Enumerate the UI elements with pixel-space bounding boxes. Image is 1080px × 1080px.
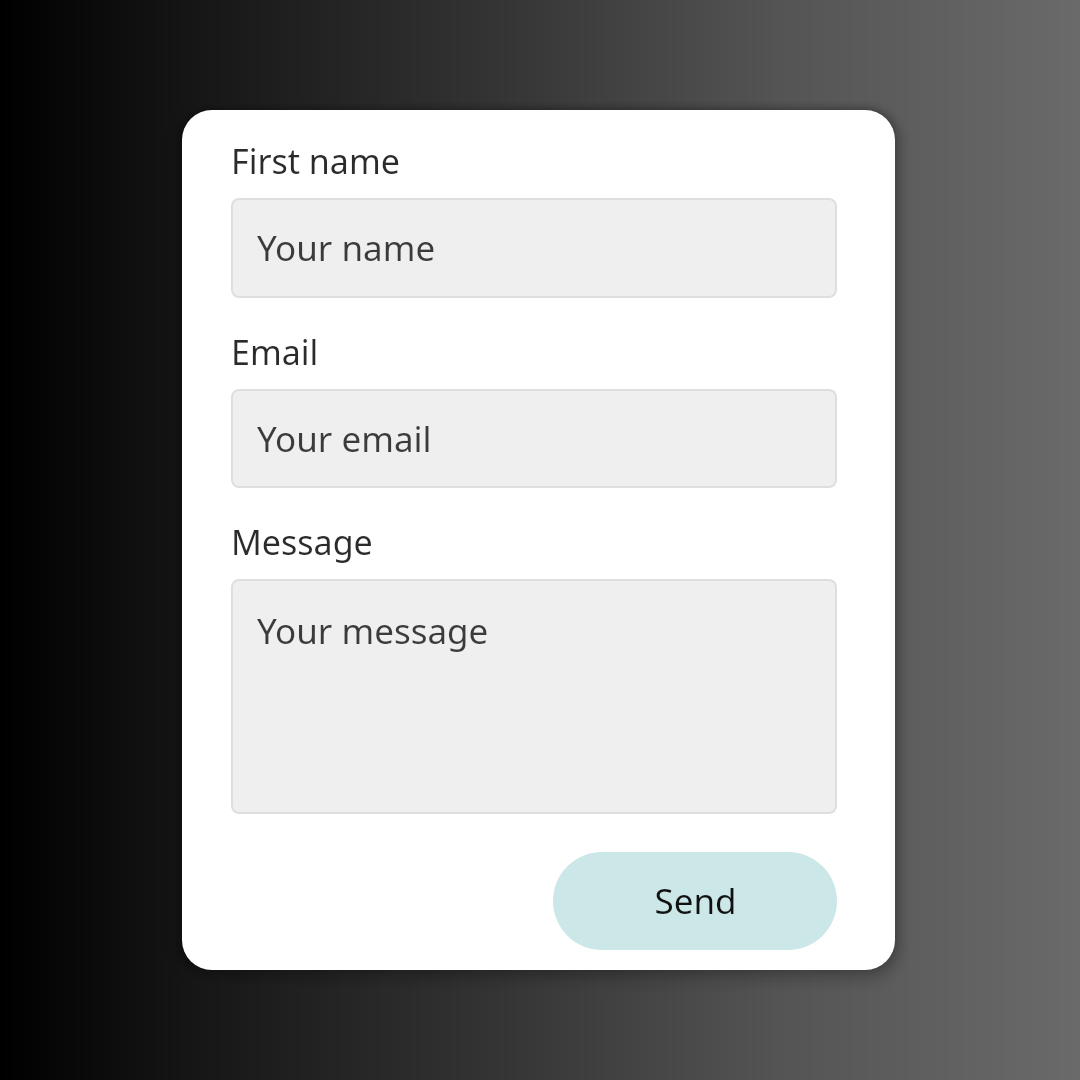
staticText: Your name: [257, 224, 436, 272]
staticText: Your message: [257, 607, 489, 655]
staticText: Message: [231, 519, 373, 565]
button[interactable]: Your message: [231, 579, 837, 814]
button[interactable]: Your name: [231, 198, 837, 298]
staticText: Your email: [257, 415, 432, 463]
button[interactable]: Your email: [231, 389, 837, 488]
staticText: First name: [231, 138, 400, 184]
staticText: Email: [231, 329, 319, 375]
staticText: Send: [654, 877, 737, 925]
button[interactable]: Send: [553, 852, 837, 950]
